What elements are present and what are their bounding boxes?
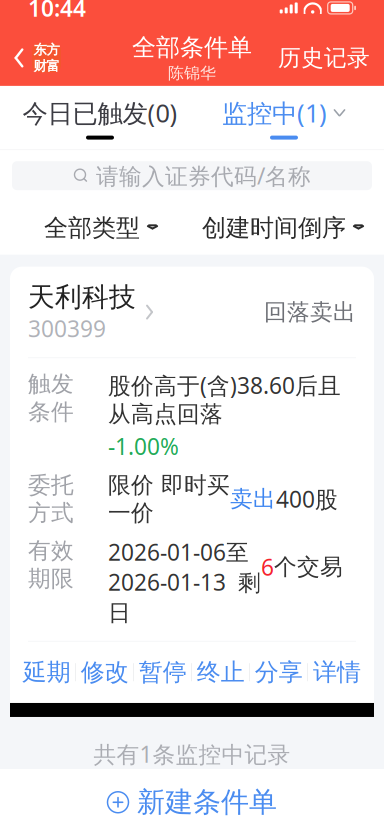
staticText: 全部类型 (44, 213, 140, 243)
staticText: 东 (33, 42, 46, 58)
staticText: 委托方式 (28, 471, 74, 527)
staticText: 方 (46, 42, 59, 58)
staticText: 回落卖出 (264, 298, 356, 326)
staticText: 个交易 (274, 553, 343, 581)
button[interactable]: 历史记录 (278, 38, 384, 78)
button[interactable]: 全部类型 (10, 201, 192, 255)
staticText: 今日已触发(0) (22, 96, 177, 129)
staticText: 分享 (255, 657, 303, 687)
staticText: 6 (261, 552, 274, 582)
staticText: 日 (108, 599, 131, 627)
button[interactable]: 新建条件单 (0, 769, 384, 831)
staticText: 有效期限 (28, 537, 74, 592)
staticText: 触发条件 (28, 370, 74, 426)
staticText: 10:44 (28, 0, 86, 23)
staticText: 监控中(1) (222, 96, 327, 129)
staticText: 请输入证券代码/名称 (96, 161, 311, 191)
staticText: 300399 (28, 313, 106, 343)
staticText: -1.00% (108, 431, 179, 461)
button[interactable]: 天利科技 (10, 267, 374, 358)
button[interactable]: 暂停 (134, 653, 191, 691)
staticText: 陈锦华 (168, 63, 216, 83)
button[interactable]: 创建时间倒序 (192, 201, 374, 255)
button[interactable]: 修改 (76, 653, 133, 691)
button[interactable]: 延期 (18, 653, 75, 691)
staticText: 2026-01-06至2026-01-13 剩 (108, 537, 261, 597)
staticText: 修改 (81, 657, 129, 687)
staticText: 终止 (197, 657, 245, 687)
staticText: 400股 (276, 484, 338, 514)
button[interactable]: 分享 (250, 653, 307, 691)
staticText: 共有1条监控中记录 (93, 739, 290, 769)
button[interactable]: 返回 (0, 37, 61, 78)
staticText: 股价高于(含)38.60后且从高点回落 (108, 370, 341, 428)
button[interactable]: 今日已触发(0) (8, 86, 192, 149)
staticText: 延期 (23, 657, 71, 687)
staticText: 历史记录 (278, 44, 370, 72)
staticText: 天利科技 (28, 281, 136, 313)
button[interactable]: 详情 (308, 653, 366, 691)
button[interactable]: 请输入证券代码/名称 (12, 161, 372, 190)
staticText: 详情 (313, 657, 361, 687)
button[interactable]: 终止 (192, 653, 249, 691)
staticText: 富 (46, 58, 59, 74)
button[interactable]: 监控中(1) (192, 86, 376, 149)
staticText: 创建时间倒序 (202, 213, 346, 243)
staticText: 限价 即时买一价 (108, 471, 230, 527)
staticText: 财 (33, 58, 46, 74)
staticText: 新建条件单 (137, 785, 277, 819)
staticText: 全部条件单 (132, 33, 252, 62)
staticText: 卖出 (230, 485, 276, 513)
staticText: 暂停 (139, 657, 187, 687)
